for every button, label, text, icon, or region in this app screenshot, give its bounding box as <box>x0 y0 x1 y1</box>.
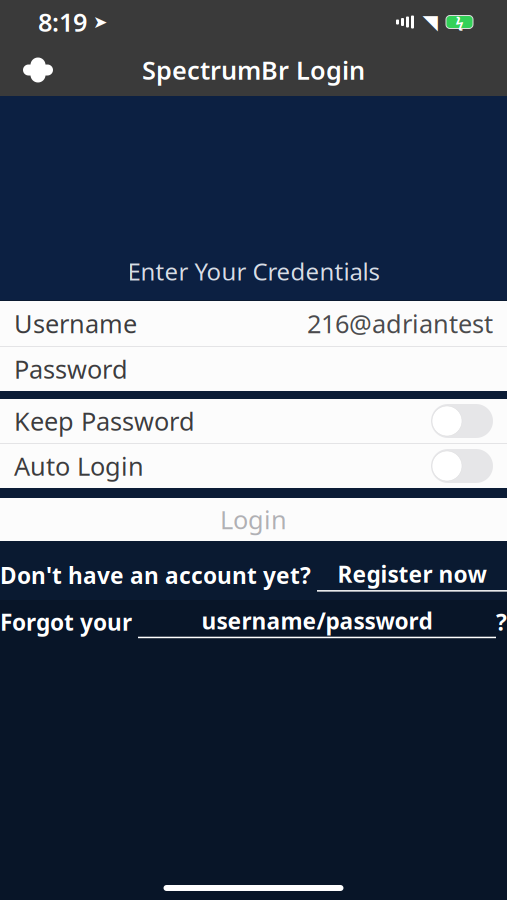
staticText: Register now <box>337 559 486 589</box>
button[interactable]: Username <box>0 301 507 346</box>
staticText: Login <box>220 503 287 536</box>
staticText: Keep Password <box>14 404 195 438</box>
staticText: Password <box>14 352 128 386</box>
button[interactable]: Forgot your <box>0 592 507 638</box>
button[interactable]: Login <box>0 498 507 541</box>
button[interactable]: Auto Login <box>0 444 507 488</box>
button[interactable]: Password <box>0 347 507 391</box>
staticText: username/password <box>201 606 432 636</box>
staticText: Don't have an account yet? <box>0 560 317 590</box>
staticText: ◥ <box>422 11 437 33</box>
staticText: Username <box>14 307 137 340</box>
staticText: ? <box>496 607 507 637</box>
button[interactable]: Don't have an account yet? <box>0 541 507 592</box>
button[interactable]: Keep Password <box>0 399 507 443</box>
staticText: 8:19 <box>38 5 87 39</box>
staticText: 216@adriantest <box>307 307 493 340</box>
staticText: ϟ <box>455 12 463 32</box>
staticText: Forgot your <box>0 607 138 637</box>
staticText: Auto Login <box>14 449 144 483</box>
button[interactable]: Spectrum menu <box>18 50 58 90</box>
staticText: ➤ <box>93 12 108 32</box>
staticText: Enter Your Credentials <box>127 255 379 287</box>
staticText: SpectrumBr Login <box>142 53 365 87</box>
